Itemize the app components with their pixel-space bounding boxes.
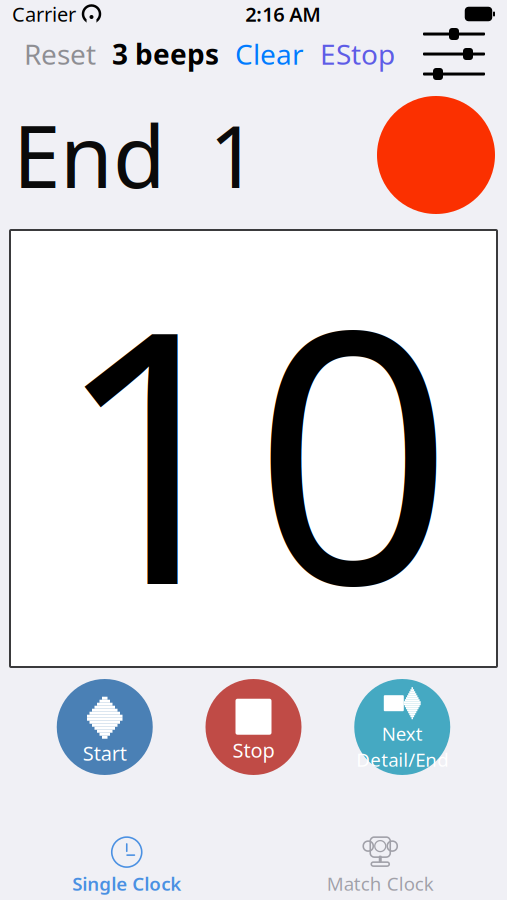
staticText: 10 [53,217,453,680]
button[interactable]: 3 beeps [104,29,227,79]
button[interactable]: Single Clock [0,830,253,900]
staticText: End 1 [13,98,258,212]
staticText: Single Clock [72,871,181,896]
staticText: Detail/End [356,747,448,772]
button[interactable]: Settings [417,28,491,80]
staticText: Clear [235,35,304,73]
button[interactable]: Match Clock [253,830,507,900]
button[interactable]: Reset [16,29,104,79]
staticText: 2:16 AM [245,1,321,27]
staticText: EStop [320,35,395,73]
staticText: Next [382,721,423,746]
staticText: Match Clock [327,871,434,896]
button[interactable]: Start [57,679,153,775]
button[interactable]: EStop [312,29,403,79]
button[interactable]: Stop [205,679,301,775]
staticText: Stop [232,737,274,763]
staticText: Carrier [12,1,76,27]
button[interactable]: Clear [227,29,312,79]
button[interactable]: Next [354,679,450,775]
staticText: Reset [24,35,96,73]
staticText: 3 beeps [112,35,219,73]
staticText: Start [83,740,127,766]
